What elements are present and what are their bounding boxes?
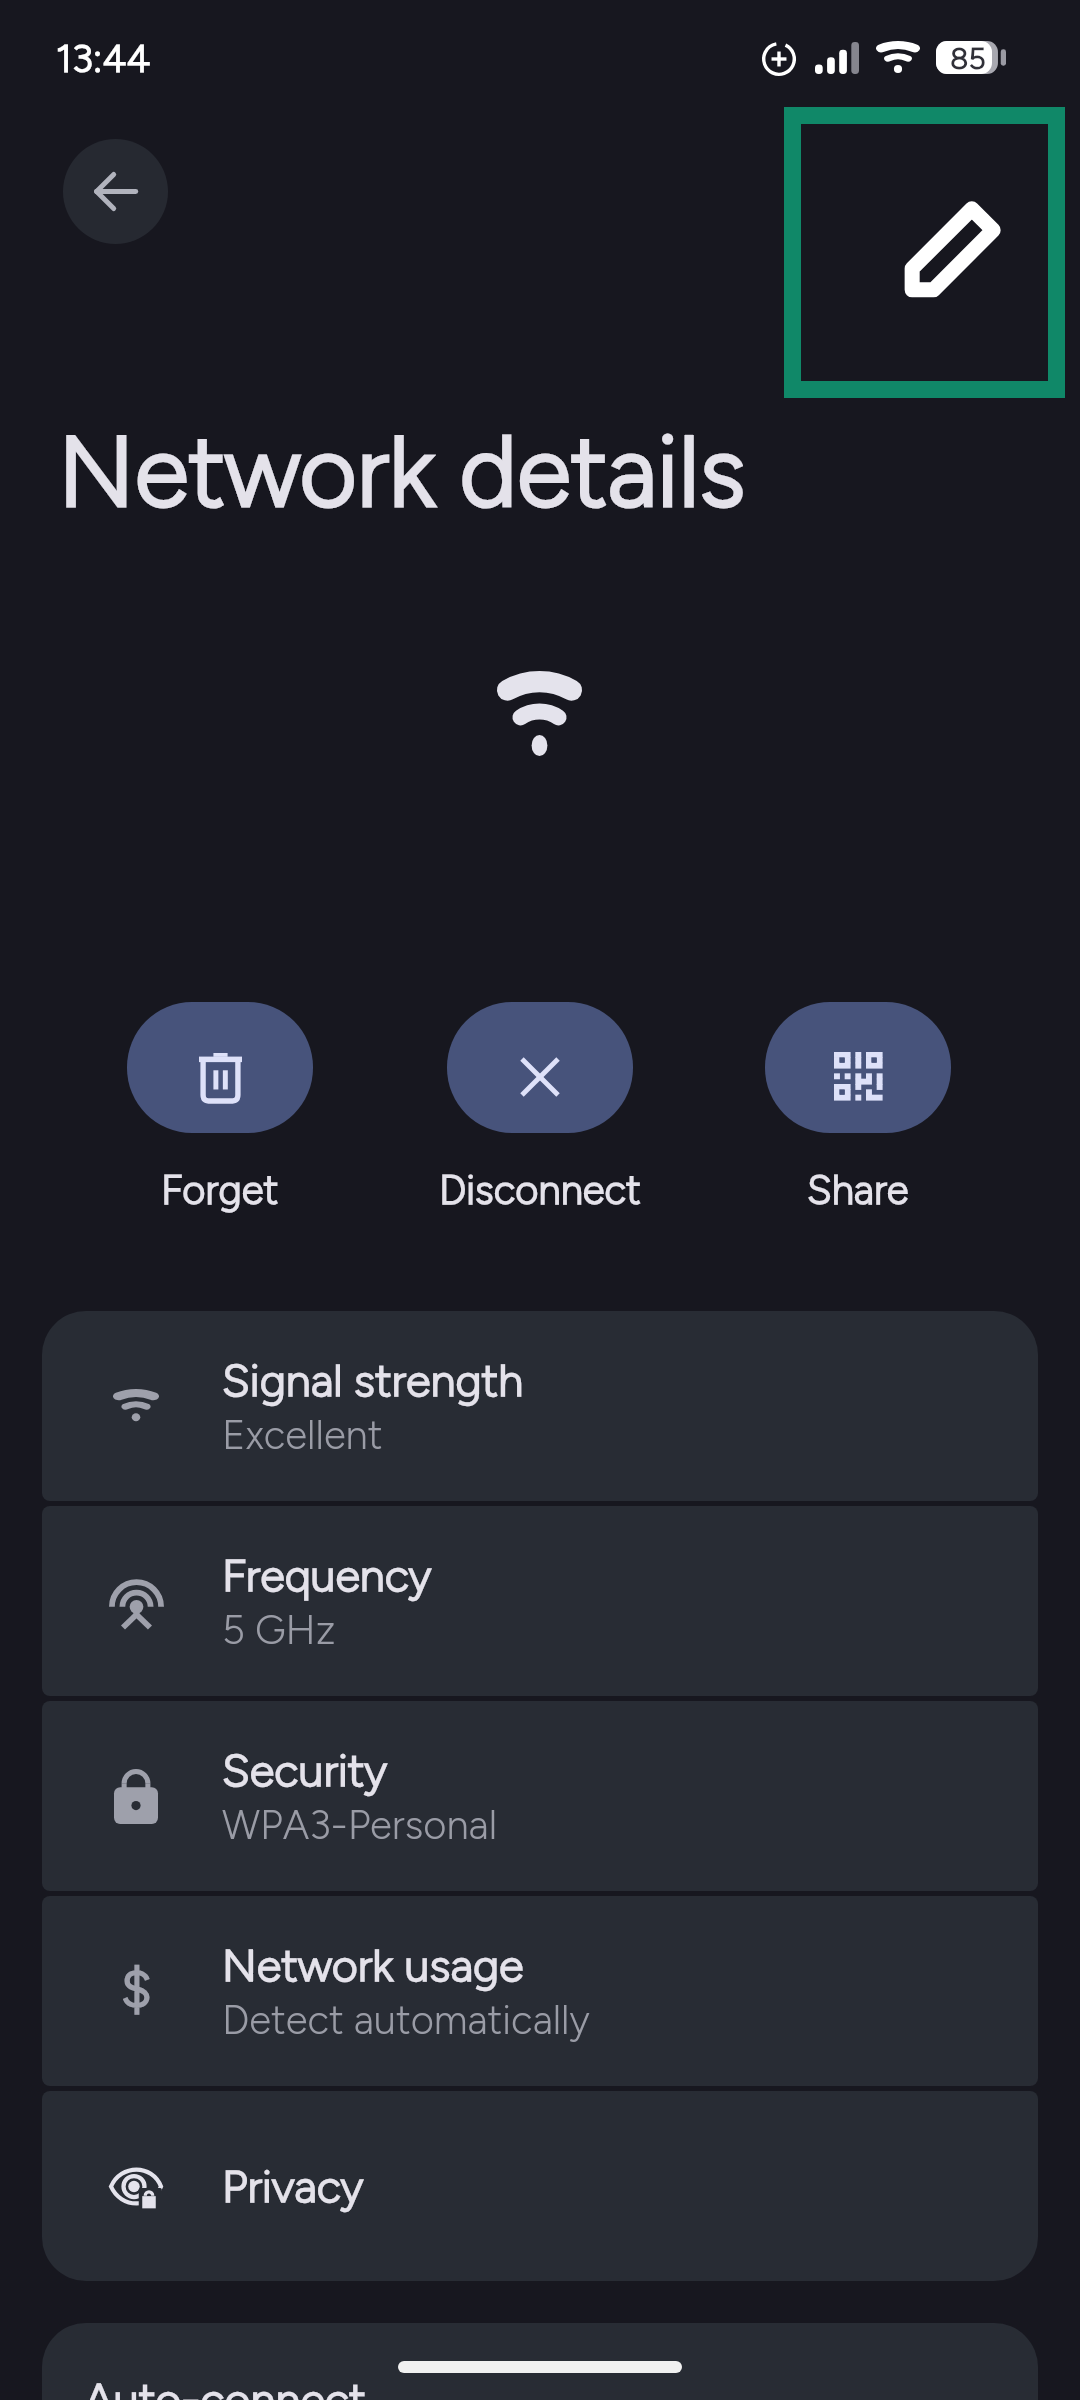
button[interactable]: Auto-connect bbox=[42, 2323, 1038, 2400]
staticText: Network usage bbox=[222, 1938, 524, 1992]
button[interactable]: $ bbox=[42, 1896, 1038, 2086]
staticText: Privacy bbox=[222, 2159, 364, 2213]
button[interactable]: Edit network bbox=[801, 124, 1048, 381]
staticText: Network details bbox=[58, 412, 746, 531]
button[interactable]: Security bbox=[42, 1701, 1038, 1891]
staticText: Excellent bbox=[222, 1411, 383, 1459]
staticText: Security bbox=[222, 1743, 388, 1797]
staticText: Frequency bbox=[222, 1548, 432, 1602]
button[interactable]: Forget bbox=[67, 1002, 373, 1214]
button[interactable]: Signal strength bbox=[42, 1311, 1038, 1501]
staticText: Detect automatically bbox=[222, 1996, 590, 2044]
button[interactable]: Back bbox=[63, 139, 168, 244]
button[interactable]: Privacy bbox=[42, 2091, 1038, 2281]
button[interactable]: Frequency bbox=[42, 1506, 1038, 1696]
staticText: Signal strength bbox=[222, 1353, 524, 1407]
staticText: 5 GHz bbox=[222, 1606, 336, 1654]
button[interactable]: Disconnect bbox=[387, 1002, 693, 1214]
staticText: 13:44 bbox=[56, 35, 151, 82]
staticText: Forget bbox=[161, 1166, 279, 1214]
button[interactable]: Share bbox=[705, 1002, 1011, 1214]
staticText: Auto-connect bbox=[84, 2372, 366, 2400]
staticText: $ bbox=[121, 1957, 152, 2022]
staticText: Disconnect bbox=[439, 1166, 641, 1214]
staticText: Share bbox=[807, 1166, 909, 1214]
staticText: 85 bbox=[950, 40, 986, 73]
staticText: WPA3-Personal bbox=[222, 1801, 498, 1849]
